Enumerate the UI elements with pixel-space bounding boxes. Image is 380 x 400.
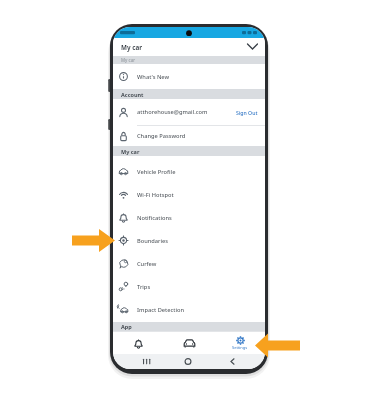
button[interactable]: What's New xyxy=(113,64,265,89)
staticText: Vehicle Profile xyxy=(137,168,176,176)
button[interactable]: Trips xyxy=(113,275,265,298)
button[interactable]: Wi-Fi Hotspot xyxy=(113,183,265,206)
staticText: Settings xyxy=(232,345,248,350)
button[interactable]: atthorehouse@gmail.com xyxy=(113,99,265,125)
staticText: My car xyxy=(121,43,143,52)
staticText: Change Password xyxy=(137,132,186,140)
button[interactable]: Vehicle Profile xyxy=(113,160,265,183)
button[interactable] xyxy=(113,332,163,354)
staticText: Impact Detection xyxy=(137,306,185,314)
staticText: Boundaries xyxy=(137,237,169,245)
button[interactable]: Impact Detection xyxy=(113,298,265,321)
staticText: Wi-Fi Hotspot xyxy=(137,191,174,199)
staticText: What's New xyxy=(137,73,170,81)
button[interactable]: Settings xyxy=(214,332,265,354)
staticText: Trips xyxy=(137,283,151,291)
staticText: Curfew xyxy=(137,260,157,268)
button[interactable]: Notifications xyxy=(113,206,265,229)
button[interactable]: Boundaries xyxy=(113,229,265,252)
staticText: App xyxy=(121,323,132,330)
button[interactable]: Curfew xyxy=(113,252,265,275)
button[interactable]: Sign Out xyxy=(236,109,258,116)
staticText: atthorehouse@gmail.com xyxy=(137,108,208,116)
staticText: My car xyxy=(121,148,140,155)
button[interactable] xyxy=(163,332,214,354)
staticText: Notifications xyxy=(137,214,172,222)
staticText: Account xyxy=(121,91,144,98)
button[interactable] xyxy=(247,43,258,50)
button[interactable]: Change Password xyxy=(113,126,265,146)
staticText: My car xyxy=(121,57,136,63)
